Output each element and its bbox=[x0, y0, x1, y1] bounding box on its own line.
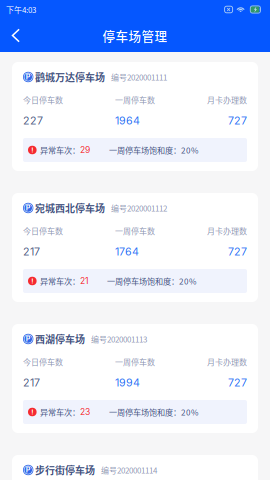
staticText: 编号2020001113 bbox=[91, 333, 147, 345]
staticText: 727 bbox=[228, 114, 247, 127]
staticText: 一周停车数 bbox=[115, 356, 155, 368]
button[interactable]: P bbox=[12, 455, 258, 480]
staticText: 西湖停车场 bbox=[35, 332, 85, 346]
staticText: 727 bbox=[228, 376, 247, 389]
staticText: 727 bbox=[228, 245, 247, 258]
staticText: 宛城西北停车场 bbox=[35, 201, 105, 215]
staticText: 步行街停车场 bbox=[35, 463, 95, 477]
staticText: 下午4:03 bbox=[6, 4, 36, 15]
staticText: ! bbox=[31, 146, 33, 154]
staticText: 编号2020001114 bbox=[101, 464, 157, 476]
staticText: 一周停车数 bbox=[115, 225, 155, 237]
staticText: 227 bbox=[23, 114, 43, 127]
button[interactable]: P bbox=[12, 193, 258, 302]
staticText: 1764 bbox=[115, 245, 139, 258]
staticText: 编号2020001112 bbox=[111, 202, 167, 214]
button[interactable]: P bbox=[12, 324, 258, 433]
staticText: 1994 bbox=[115, 376, 140, 389]
staticText: 月卡办理数 bbox=[207, 225, 247, 237]
staticText: 异常车次： bbox=[40, 406, 80, 418]
staticText: ! bbox=[31, 408, 33, 416]
staticText: 停车场管理 bbox=[102, 26, 167, 44]
staticText: 月卡办理数 bbox=[207, 94, 247, 106]
staticText: 鹳城万达停车场 bbox=[35, 70, 105, 84]
staticText: P bbox=[26, 335, 31, 343]
staticText: 29 bbox=[80, 145, 90, 155]
staticText: 217 bbox=[23, 376, 40, 389]
button[interactable]: P bbox=[12, 62, 258, 171]
staticText: 异常车次： bbox=[40, 144, 80, 156]
staticText: P bbox=[26, 73, 31, 81]
staticText: 一周停车场饱和度：20% bbox=[107, 275, 196, 287]
staticText: 今日停车数 bbox=[23, 356, 63, 368]
staticText: 编号2020001111 bbox=[111, 71, 167, 83]
staticText: ! bbox=[31, 277, 33, 285]
staticText: P bbox=[26, 466, 31, 474]
staticText: 23 bbox=[80, 407, 90, 417]
staticText: P bbox=[26, 204, 31, 212]
staticText: 月卡办理数 bbox=[207, 356, 247, 368]
staticText: 21 bbox=[80, 276, 88, 286]
staticText: 今日停车数 bbox=[23, 225, 63, 237]
staticText: 异常车次： bbox=[40, 275, 80, 287]
button[interactable]: Back bbox=[0, 19, 28, 52]
staticText: 一周停车数 bbox=[115, 94, 155, 106]
staticText: 一周停车场饱和度：20% bbox=[109, 144, 198, 156]
staticText: 今日停车数 bbox=[23, 94, 63, 106]
staticText: 1964 bbox=[115, 114, 140, 127]
staticText: 一周停车场饱和度：20% bbox=[109, 406, 198, 418]
staticText: 217 bbox=[23, 245, 40, 258]
